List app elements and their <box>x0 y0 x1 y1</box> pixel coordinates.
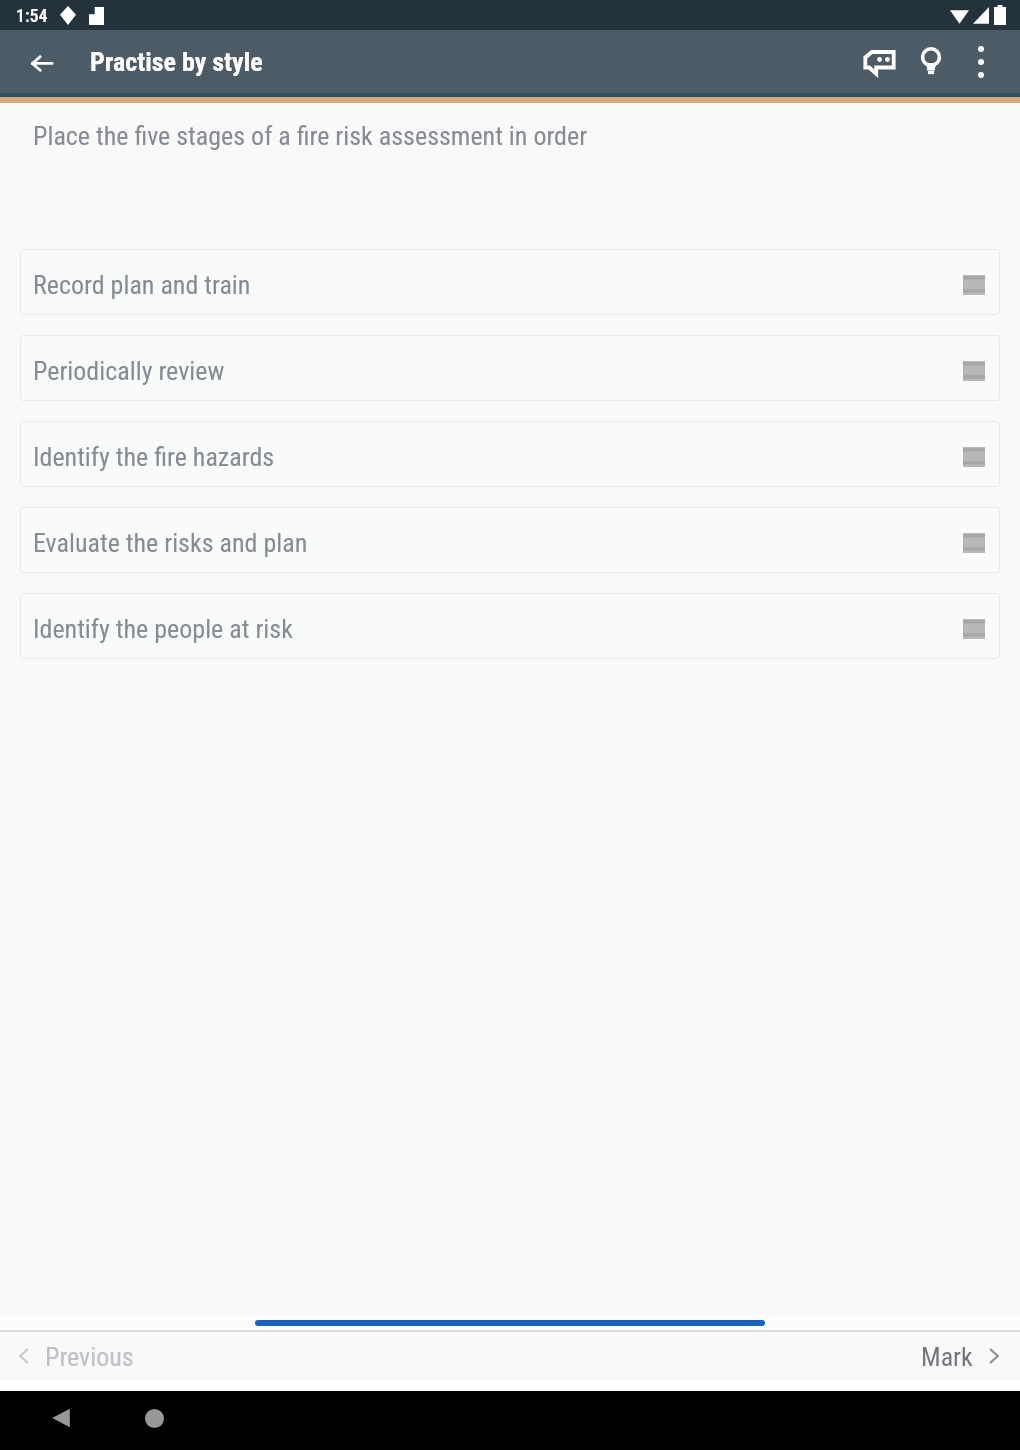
button[interactable]: Back <box>41 1398 81 1438</box>
staticText: 1:54 <box>16 5 48 26</box>
button[interactable]: Record plan and train <box>20 249 1000 315</box>
button[interactable]: Hint <box>906 30 956 93</box>
button[interactable]: Mark <box>903 1332 1020 1380</box>
button[interactable]: Previous <box>0 1332 152 1380</box>
staticText: Mark <box>921 1342 973 1372</box>
staticText: Practise by style <box>90 47 263 77</box>
button[interactable]: Identify the people at risk <box>20 593 1000 659</box>
button[interactable]: Identify the fire hazards <box>20 421 1000 487</box>
staticText: Evaluate the risks and plan <box>33 528 308 558</box>
button[interactable]: Back <box>19 38 66 85</box>
staticText: Place the five stages of a fire risk ass… <box>33 121 588 151</box>
button[interactable]: Comments <box>852 30 906 93</box>
staticText: Record plan and train <box>33 270 251 300</box>
staticText: Identify the people at risk <box>33 614 293 644</box>
staticText: Previous <box>45 1342 134 1372</box>
staticText: Periodically review <box>33 356 225 386</box>
staticText: Identify the fire hazards <box>33 442 275 472</box>
button[interactable]: Periodically review <box>20 335 1000 401</box>
button[interactable]: Evaluate the risks and plan <box>20 507 1000 573</box>
button[interactable]: More options <box>956 30 1006 93</box>
button[interactable]: Home <box>134 1398 174 1438</box>
